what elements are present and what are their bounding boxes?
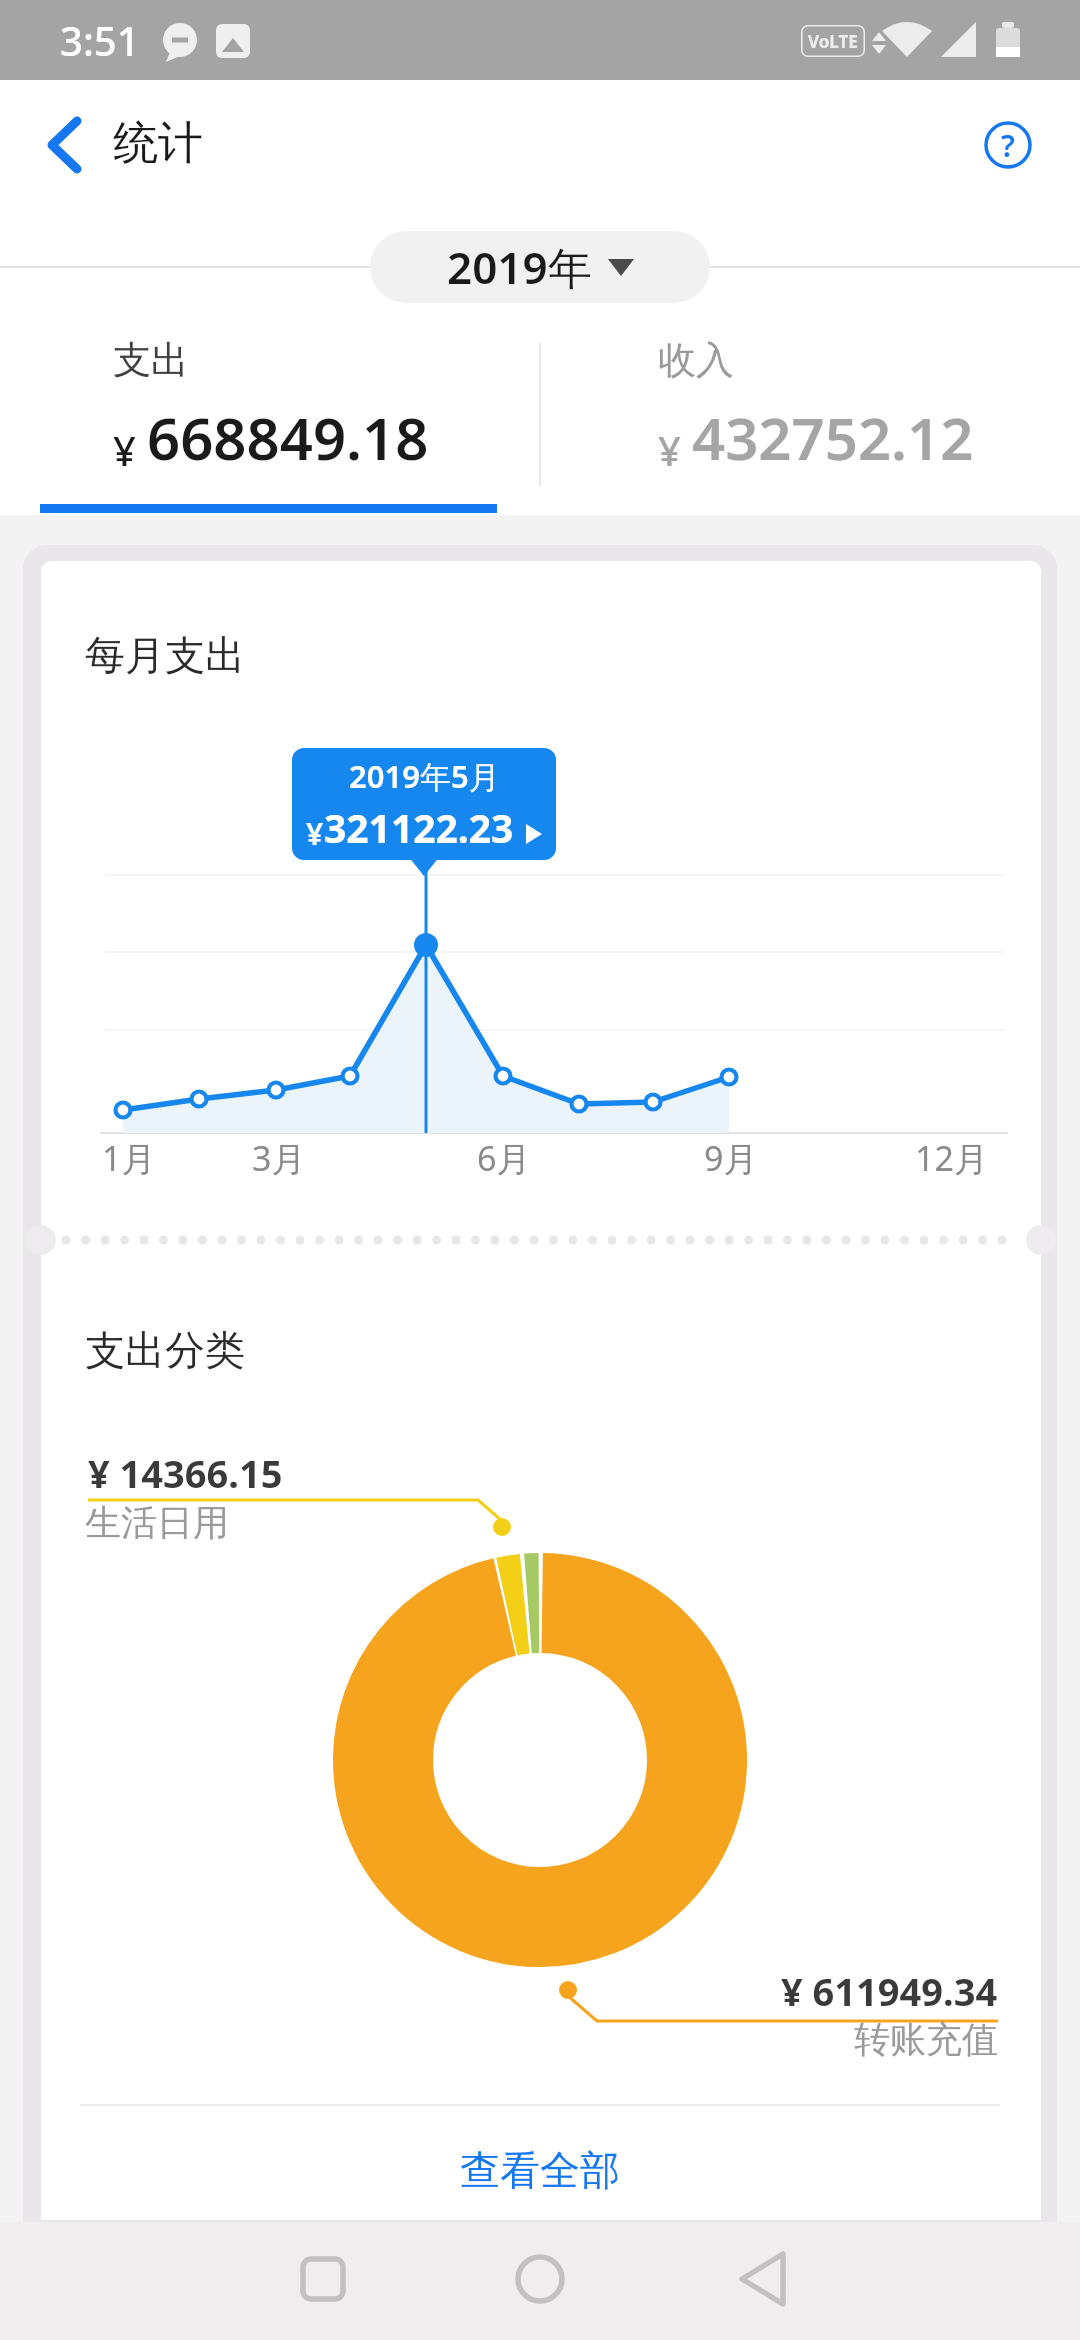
staticText: ¥: [658, 423, 692, 477]
button[interactable]: [480, 2222, 600, 2340]
button[interactable]: [263, 2222, 383, 2340]
staticText: VoLTE: [808, 30, 858, 53]
staticText: 6月: [477, 1135, 531, 1181]
staticText: ?: [1001, 125, 1015, 166]
staticText: 转账充值: [854, 2017, 998, 2062]
staticText: 查看全部: [460, 2145, 620, 2195]
staticText: 生活日用: [85, 1500, 229, 1545]
staticText: ¥: [306, 813, 324, 854]
staticText: 9月: [704, 1135, 758, 1181]
button[interactable]: 2019年: [370, 231, 710, 303]
staticText: 3:51: [60, 13, 140, 67]
staticText: 3月: [252, 1135, 306, 1181]
staticText: 收入: [658, 336, 734, 384]
staticText: 2019年5月: [349, 755, 500, 797]
staticText: 321122.23: [324, 801, 514, 854]
button[interactable]: 支出: [0, 303, 540, 515]
button[interactable]: 查看全部: [420, 2135, 660, 2205]
staticText: 668849.18: [147, 398, 429, 477]
staticText: ¥: [113, 423, 147, 477]
button[interactable]: 收入: [540, 303, 1080, 515]
staticText: 统计: [113, 115, 203, 172]
staticText: 每月支出: [85, 630, 245, 680]
staticText: 1月: [102, 1135, 156, 1181]
staticText: 12月: [915, 1135, 988, 1181]
button[interactable]: ?: [975, 112, 1041, 178]
staticText: 432752.12: [692, 398, 974, 477]
button[interactable]: 2019年5月: [292, 748, 556, 860]
staticText: ¥ 14366.15: [88, 1447, 283, 1499]
staticText: ¥ 611949.34: [781, 1965, 998, 2017]
button[interactable]: [702, 2222, 822, 2340]
staticText: 2019年: [447, 237, 592, 297]
button[interactable]: [30, 105, 100, 185]
staticText: 支出: [113, 336, 189, 384]
staticText: 支出分类: [85, 1325, 245, 1375]
